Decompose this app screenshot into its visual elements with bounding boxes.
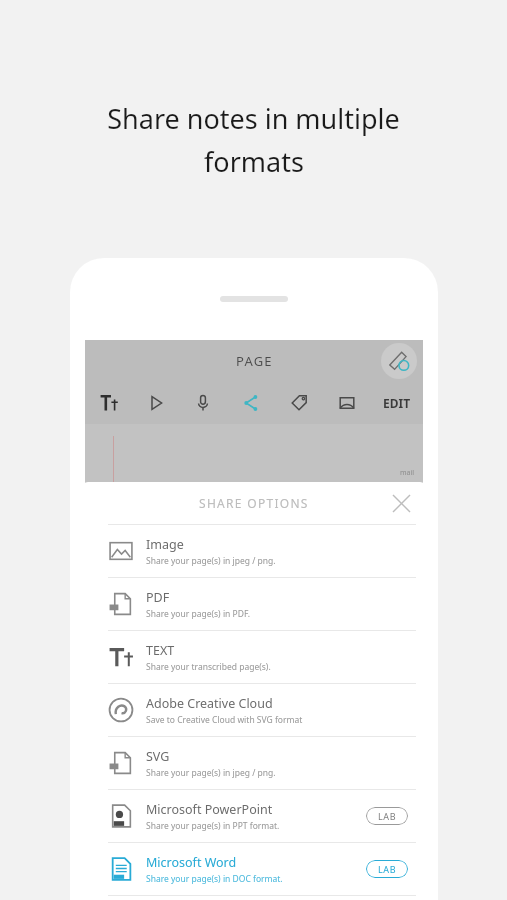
staticText: formats [204, 143, 304, 180]
staticText: Share your page(s) in PPT format. [146, 820, 280, 832]
button[interactable]: TEXT [82, 631, 426, 683]
button[interactable]: Notebook [323, 382, 371, 424]
staticText: Share your page(s) in DOC format. [146, 873, 283, 885]
button[interactable]: Text [85, 382, 132, 424]
button[interactable]: Microsoft Word [82, 843, 426, 895]
staticText: PAGE [236, 352, 273, 370]
staticText: Microsoft Word [146, 854, 237, 871]
staticText: Adobe Creative Cloud [146, 695, 273, 712]
staticText: LAB [378, 810, 397, 822]
button[interactable]: Image [82, 525, 426, 577]
staticText: PDF [146, 589, 170, 606]
button[interactable]: Adobe Creative Cloud [82, 684, 426, 736]
button[interactable]: SVG [82, 737, 426, 789]
button[interactable]: Record [179, 382, 227, 424]
staticText: Share notes in multiple [107, 100, 400, 137]
staticText: Share your page(s) in jpeg / png. [146, 767, 276, 779]
button[interactable]: Close [386, 488, 416, 518]
button[interactable]: Pen tool [381, 343, 417, 379]
button[interactable]: Play [132, 382, 179, 424]
staticText: Image [146, 536, 184, 553]
button[interactable]: PDF [82, 578, 426, 630]
staticText: Share your page(s) in PDF. [146, 608, 251, 620]
button[interactable]: Microsoft PowerPoint [82, 790, 426, 842]
button[interactable]: Share [227, 382, 275, 424]
staticText: LAB [378, 863, 397, 875]
button[interactable]: EDIT [371, 382, 423, 424]
staticText: SVG [146, 748, 170, 765]
staticText: Microsoft PowerPoint [146, 801, 273, 818]
staticText: SHARE OPTIONS [199, 495, 309, 511]
button[interactable]: Tag [275, 382, 323, 424]
staticText: Save to Creative Cloud with SVG format [146, 714, 303, 726]
staticText: mail [400, 468, 415, 478]
staticText: EDIT [383, 395, 411, 411]
staticText: Share your transcribed page(s). [146, 661, 271, 673]
staticText: TEXT [146, 642, 175, 659]
staticText: Share your page(s) in jpeg / png. [146, 555, 276, 567]
